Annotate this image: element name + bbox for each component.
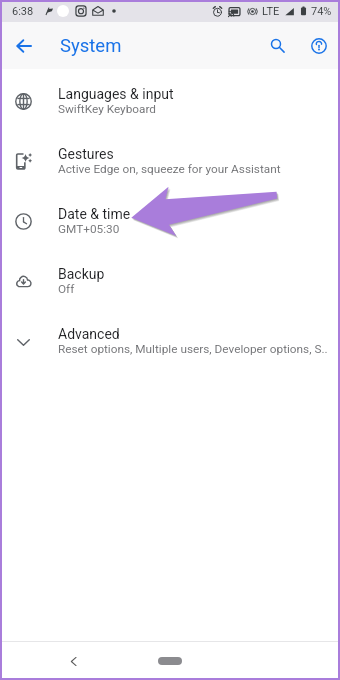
button[interactable]: Back xyxy=(0,22,47,69)
button[interactable]: Gestures xyxy=(0,131,340,191)
button[interactable]: Date & time xyxy=(0,191,340,251)
staticText: Gestures xyxy=(58,146,114,162)
button[interactable]: Backup xyxy=(0,251,340,311)
staticText: System xyxy=(60,35,122,57)
button[interactable]: Help xyxy=(298,22,340,69)
staticText: Active Edge on, squeeze for your Assista… xyxy=(58,162,281,176)
staticText: Advanced xyxy=(58,326,120,342)
staticText: LTE xyxy=(262,5,280,18)
staticText: Backup xyxy=(58,266,105,282)
staticText: Languages & input xyxy=(58,86,174,102)
button[interactable]: Advanced xyxy=(0,311,340,371)
button[interactable]: Home xyxy=(158,657,182,665)
staticText: 74% xyxy=(311,5,332,18)
staticText: Off xyxy=(58,282,75,296)
staticText: Reset options, Multiple users, Developer… xyxy=(58,342,328,356)
staticText: 6:38 xyxy=(12,5,34,18)
button[interactable]: Search xyxy=(256,22,298,69)
staticText: SwiftKey Keyboard xyxy=(58,102,156,116)
staticText: Date & time xyxy=(58,206,131,222)
button[interactable]: Languages & input xyxy=(0,71,340,131)
button[interactable]: Back xyxy=(62,650,84,672)
staticText: GMT+05:30 xyxy=(58,222,120,236)
